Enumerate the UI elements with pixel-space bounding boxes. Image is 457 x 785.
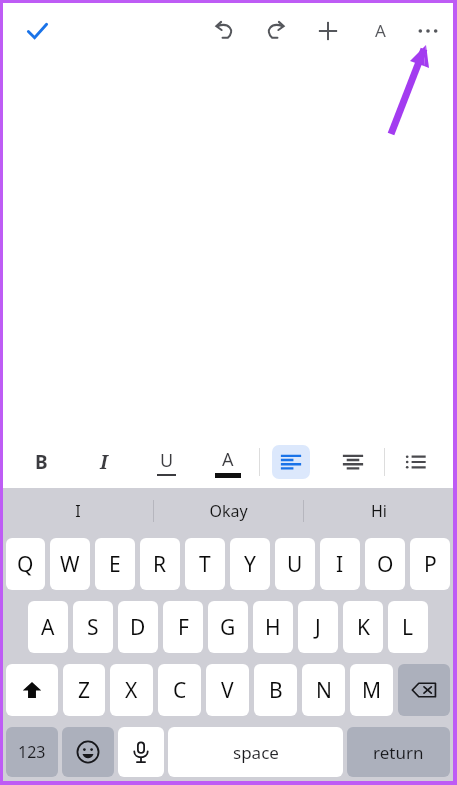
- staticText: A: [375, 19, 386, 42]
- staticText: G: [220, 613, 236, 642]
- button[interactable]: O: [365, 538, 405, 590]
- button[interactable]: Align left: [260, 436, 322, 488]
- button[interactable]: N: [302, 664, 345, 716]
- staticText: C: [173, 676, 187, 705]
- staticText: A: [222, 447, 234, 472]
- staticText: E: [109, 550, 121, 579]
- staticText: P: [424, 550, 437, 579]
- button[interactable]: Add: [309, 12, 347, 50]
- button[interactable]: C: [158, 664, 201, 716]
- button[interactable]: Backspace: [398, 664, 450, 716]
- button[interactable]: Okay: [154, 488, 303, 534]
- button[interactable]: I: [320, 538, 360, 590]
- button[interactable]: Bold: [9, 436, 72, 488]
- staticText: U: [287, 550, 303, 579]
- button[interactable]: M: [350, 664, 393, 716]
- button[interactable]: A: [28, 601, 68, 653]
- staticText: S: [87, 613, 99, 642]
- button[interactable]: Y: [230, 538, 270, 590]
- button[interactable]: D: [118, 601, 158, 653]
- staticText: D: [130, 613, 146, 642]
- staticText: return: [373, 741, 424, 764]
- button[interactable]: return: [347, 727, 450, 777]
- staticText: B: [35, 449, 48, 475]
- staticText: K: [357, 613, 370, 642]
- button[interactable]: Q: [6, 538, 45, 590]
- button[interactable]: More options: [409, 12, 447, 50]
- staticText: O: [377, 550, 394, 579]
- staticText: W: [60, 550, 80, 579]
- button[interactable]: K: [343, 601, 383, 653]
- staticText: H: [265, 613, 281, 642]
- button[interactable]: Italic: [72, 436, 135, 488]
- staticText: Okay: [209, 500, 248, 522]
- button[interactable]: J: [298, 601, 338, 653]
- staticText: L: [402, 613, 414, 642]
- staticText: Q: [17, 550, 34, 579]
- button[interactable]: Z: [63, 664, 105, 716]
- button[interactable]: Format: [361, 12, 399, 50]
- button[interactable]: Done: [15, 9, 59, 53]
- staticText: I: [75, 500, 81, 522]
- button[interactable]: G: [208, 601, 248, 653]
- button[interactable]: T: [185, 538, 225, 590]
- button[interactable]: B: [254, 664, 297, 716]
- button[interactable]: Align center: [322, 436, 384, 488]
- staticText: space: [233, 741, 279, 764]
- button[interactable]: W: [50, 538, 90, 590]
- staticText: I: [100, 449, 108, 475]
- button[interactable]: H: [253, 601, 293, 653]
- staticText: M: [362, 676, 382, 705]
- staticText: N: [316, 676, 332, 705]
- button[interactable]: R: [140, 538, 180, 590]
- staticText: F: [178, 613, 189, 642]
- button[interactable]: E: [95, 538, 135, 590]
- button[interactable]: Emoji: [62, 727, 114, 777]
- button[interactable]: V: [206, 664, 249, 716]
- button[interactable]: space: [168, 727, 343, 777]
- staticText: Z: [78, 676, 91, 705]
- staticText: R: [153, 550, 167, 579]
- button[interactable]: L: [388, 601, 428, 653]
- staticText: V: [221, 676, 234, 705]
- button[interactable]: Voice input: [118, 727, 164, 777]
- staticText: 123: [18, 741, 46, 763]
- staticText: Hi: [371, 500, 387, 522]
- staticText: Y: [244, 550, 256, 579]
- button[interactable]: 123: [6, 727, 58, 777]
- button[interactable]: X: [110, 664, 153, 716]
- button[interactable]: S: [73, 601, 113, 653]
- button[interactable]: Underline: [135, 436, 197, 488]
- button[interactable]: Hi: [304, 488, 453, 534]
- staticText: U: [160, 448, 174, 473]
- staticText: A: [41, 613, 55, 642]
- staticText: J: [315, 613, 321, 642]
- staticText: I: [336, 550, 344, 579]
- staticText: B: [269, 676, 283, 705]
- button[interactable]: Bulleted list: [385, 436, 447, 488]
- button[interactable]: U: [275, 538, 315, 590]
- button[interactable]: I: [3, 488, 153, 534]
- staticText: T: [199, 550, 211, 579]
- button[interactable]: Shift: [6, 664, 58, 716]
- staticText: X: [125, 676, 138, 705]
- button[interactable]: P: [410, 538, 450, 590]
- button[interactable]: Undo: [205, 12, 243, 50]
- button[interactable]: Text color: [197, 436, 259, 488]
- button[interactable]: Redo: [257, 12, 295, 50]
- button[interactable]: F: [163, 601, 203, 653]
